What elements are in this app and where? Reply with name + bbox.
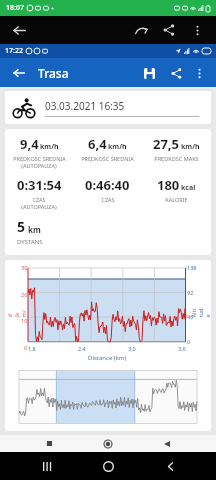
staticText: km/h [108, 142, 127, 152]
staticText: Distance (km) [88, 354, 127, 362]
staticText: 92 [187, 289, 194, 296]
button[interactable]: 9,4 [5, 135, 73, 169]
button[interactable]: More options [190, 64, 208, 82]
staticText: 9,4 [20, 135, 39, 153]
button[interactable]: Save [139, 63, 159, 83]
staticText: 0:46:40 [85, 176, 130, 194]
button[interactable]: Share [159, 20, 179, 40]
staticText: 0:31:54 [17, 176, 62, 194]
button[interactable]: 03.03.2021 16:35 [5, 91, 211, 124]
staticText: 3,0 [128, 345, 136, 352]
button[interactable]: Back [155, 452, 185, 480]
staticText: 2,4 [78, 345, 86, 352]
staticText: DYSTANS [17, 238, 43, 246]
staticText: 10 [21, 317, 28, 324]
button[interactable]: Forward [131, 20, 151, 40]
button[interactable]: 5 [5, 217, 211, 246]
button[interactable]: 0:31:54 [5, 176, 73, 210]
button[interactable]: Home [93, 452, 123, 480]
staticText: Trasa [38, 65, 69, 81]
staticText: km/h [181, 142, 200, 152]
button[interactable]: Recents [32, 452, 62, 480]
staticText: km/h [40, 142, 59, 152]
button[interactable]: 0:46:40 [73, 176, 142, 203]
staticText: 1,8 [28, 345, 36, 352]
button[interactable]: 27,5 [142, 135, 211, 162]
staticText: CZAS [32, 196, 46, 203]
staticText: (AUTOPAUZA) [21, 162, 57, 169]
button[interactable]: More options [187, 20, 207, 40]
staticText: (AUTOPAUZA) [21, 203, 57, 210]
staticText: 0 [187, 338, 191, 345]
button[interactable]: Recents [39, 435, 59, 452]
staticText: km [28, 224, 41, 235]
staticText: 180 [157, 176, 180, 194]
staticText: PRĘDKOŚĆ ŚREDNIA [13, 155, 66, 162]
staticText: 27,5 [153, 135, 180, 153]
staticText: 5 [17, 217, 26, 236]
staticText: PRĘDKOŚĆ ŚREDNIA [81, 155, 134, 162]
staticText: 3,6 [178, 345, 186, 352]
button[interactable]: Back [9, 20, 29, 40]
staticText: 138 [187, 264, 197, 271]
staticText: KALORIE [165, 196, 188, 203]
staticText: Speed (km/h) [5, 308, 33, 317]
staticText: 18:07 [6, 3, 24, 13]
button[interactable]: Back [157, 435, 177, 452]
staticText: 0 [24, 344, 28, 351]
staticText: 20 [21, 291, 28, 298]
button[interactable]: 6,4 [73, 135, 142, 162]
staticText: 17:22 [5, 46, 23, 56]
staticText: PRĘDKOŚĆ MAKS [154, 155, 199, 162]
staticText: Altitude (m) [189, 308, 211, 317]
staticText: 03.03.2021 16:35 [45, 99, 125, 113]
staticText: 6,4 [88, 135, 107, 153]
staticText: CZAS [101, 196, 115, 203]
button[interactable]: Share [166, 63, 186, 83]
staticText: 30 [21, 264, 28, 271]
staticText: 46 [187, 313, 194, 320]
button[interactable]: Navigate up [8, 62, 30, 84]
staticText: kcal [181, 183, 196, 193]
button[interactable]: 180 [142, 176, 211, 203]
button[interactable]: Home [98, 435, 118, 452]
